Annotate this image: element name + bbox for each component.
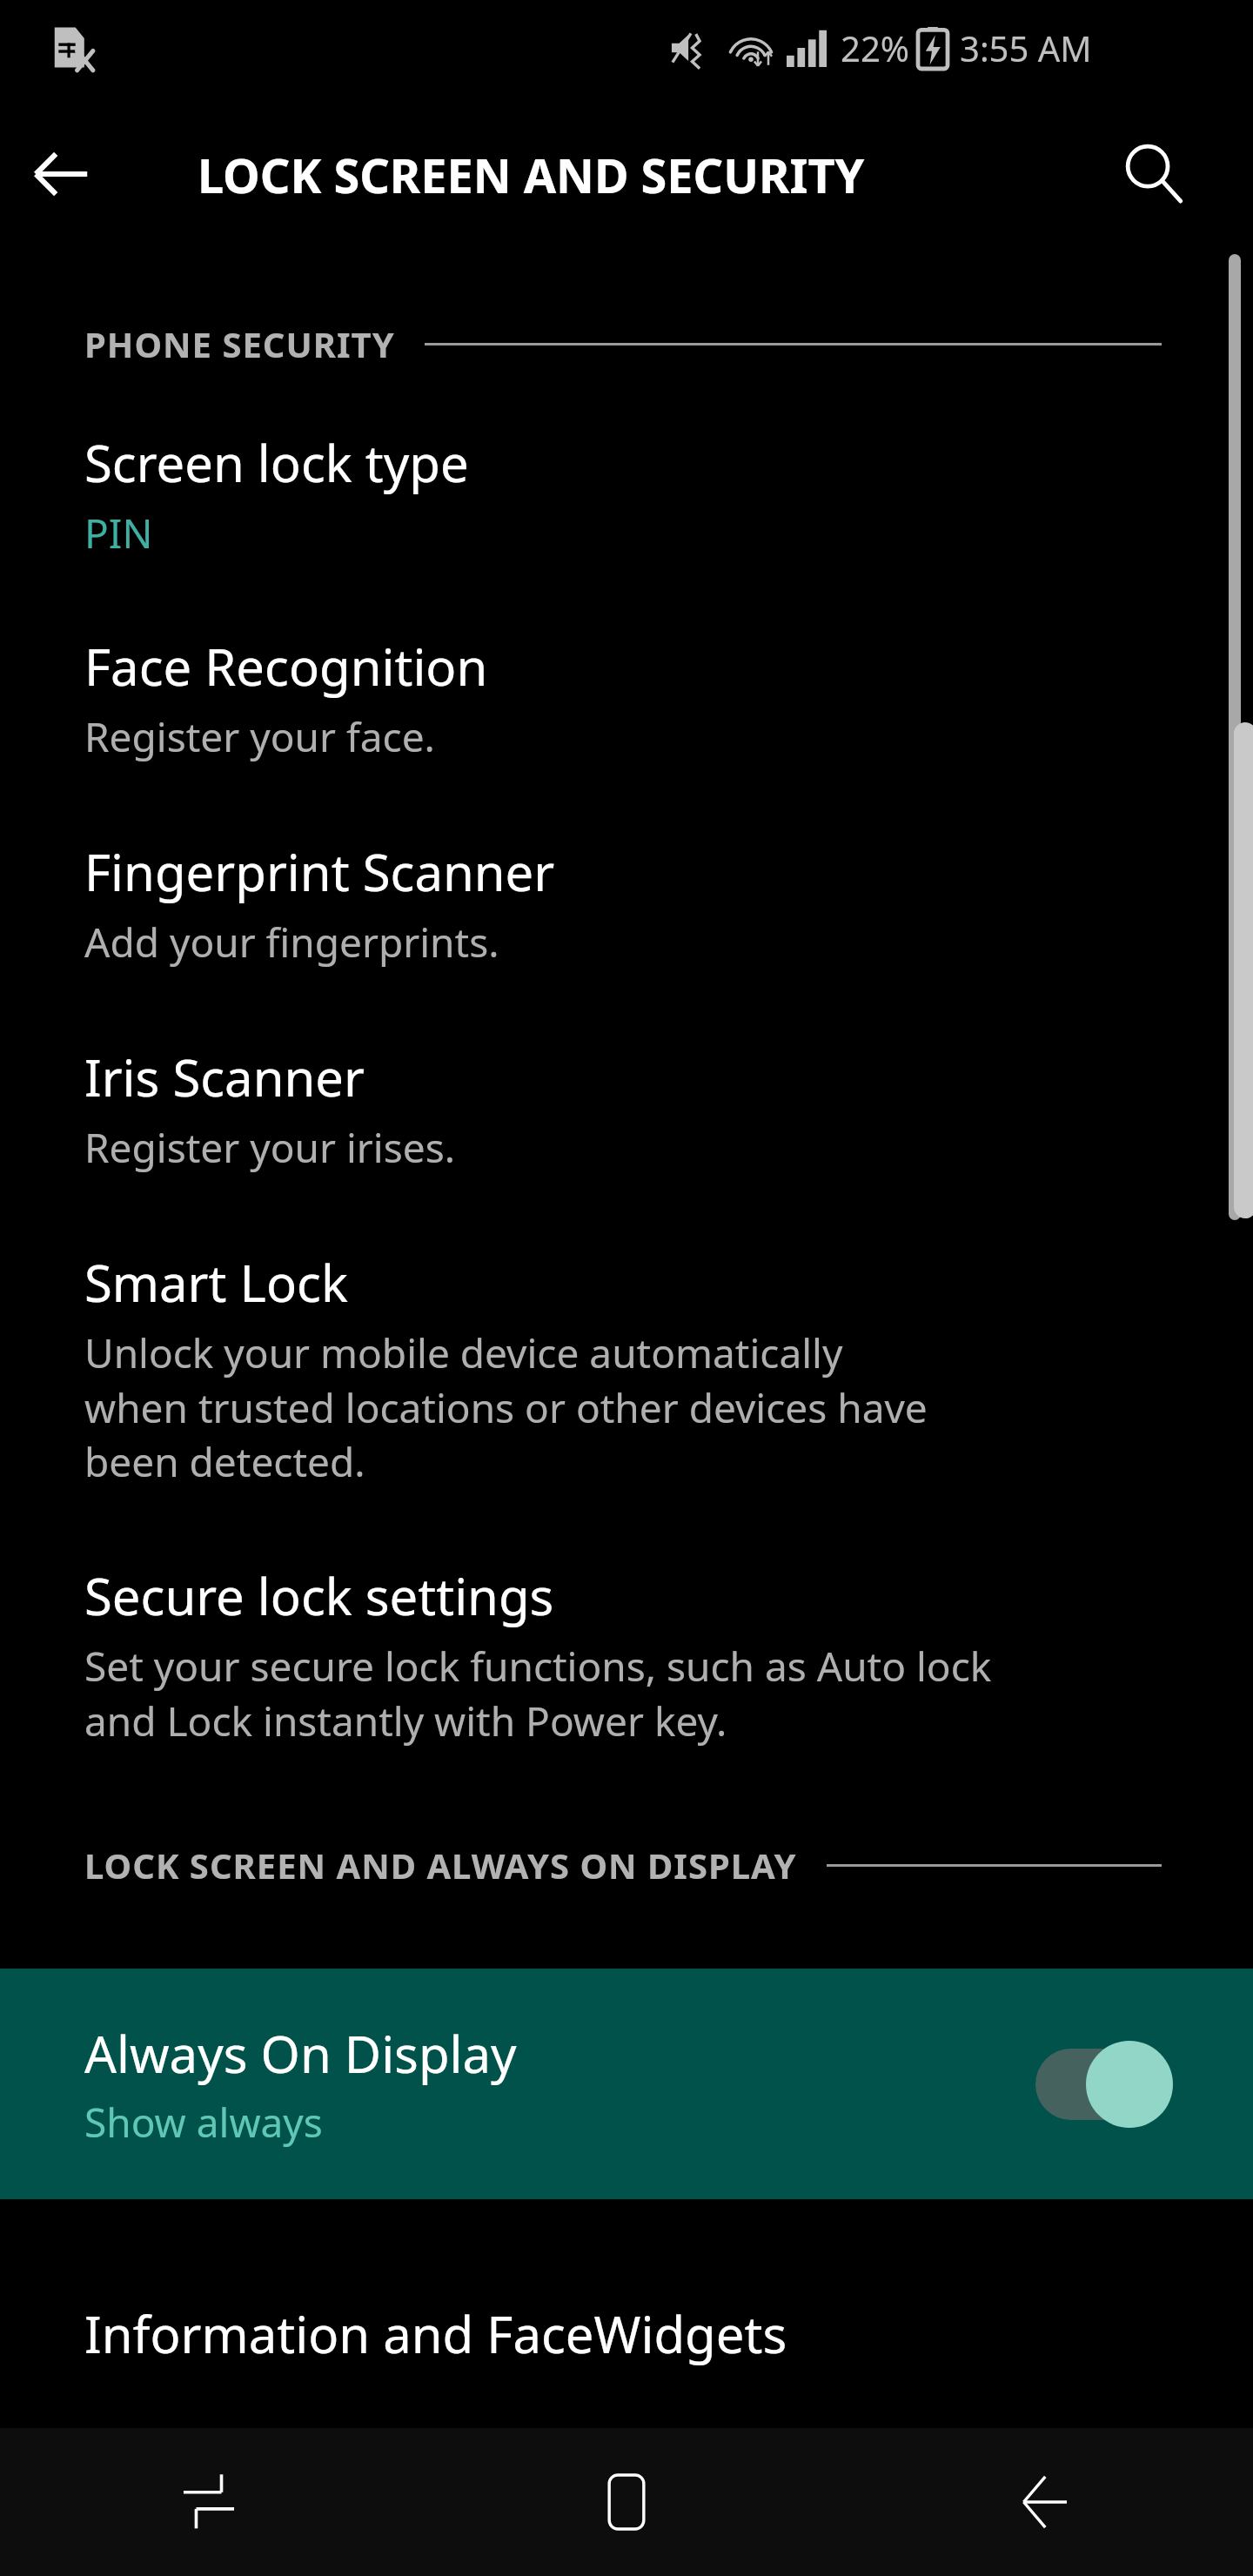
button[interactable]: Always On Display toggle — [1035, 2041, 1175, 2128]
button[interactable]: Always On Display — [0, 1969, 1253, 2199]
button[interactable]: Face Recognition — [0, 632, 1253, 764]
button[interactable]: Home — [418, 2428, 835, 2576]
button[interactable]: Back — [0, 113, 122, 235]
button[interactable]: Iris Scanner — [0, 1043, 1253, 1175]
staticText: LOCK SCREEN AND SECURITY — [198, 143, 865, 207]
staticText: Face Recognition — [84, 632, 488, 701]
staticText: 3:55 AM — [960, 24, 1092, 71]
staticText: Show always — [84, 2095, 323, 2150]
button[interactable]: Secure lock settings — [0, 1561, 1253, 1748]
button[interactable]: Screen lock type — [0, 428, 1253, 560]
staticText: 22% — [841, 24, 909, 71]
button[interactable]: Recents — [0, 2428, 418, 2576]
staticText: Smart Lock — [84, 1248, 348, 1317]
button[interactable]: Information and FaceWidgets — [0, 2299, 1253, 2368]
staticText: Add your fingerprints. — [84, 915, 499, 969]
button[interactable]: Fingerprint Scanner — [0, 837, 1253, 969]
staticText: Set your secure lock functions, such as … — [84, 1639, 992, 1748]
staticText: Secure lock settings — [84, 1561, 554, 1630]
staticText: Iris Scanner — [84, 1043, 365, 1111]
staticText: LOCK SCREEN AND ALWAYS ON DISPLAY — [84, 1841, 797, 1888]
button[interactable]: Search — [1092, 113, 1214, 235]
staticText: PHONE SECURITY — [84, 320, 395, 367]
button[interactable]: Back — [835, 2428, 1253, 2576]
staticText: Register your face. — [84, 709, 435, 764]
staticText: Screen lock type — [84, 428, 469, 497]
staticText: Fingerprint Scanner — [84, 837, 555, 906]
staticText: Unlock your mobile device automatically … — [84, 1325, 928, 1488]
staticText: Register your irises. — [84, 1120, 456, 1175]
staticText: PIN — [84, 506, 153, 560]
staticText: Always On Display — [84, 2019, 517, 2088]
button[interactable]: Smart Lock — [0, 1248, 1253, 1488]
